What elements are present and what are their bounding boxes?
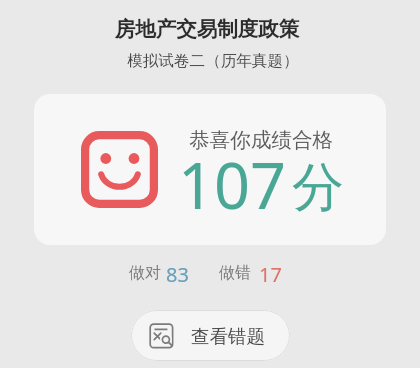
staticText: 107: [178, 142, 287, 228]
staticText: 恭喜你成绩合格: [189, 127, 334, 153]
staticText: 做错: [219, 263, 251, 283]
staticText: 83: [166, 261, 189, 288]
other: 查看错题: [149, 323, 177, 351]
staticText: 分: [292, 155, 344, 221]
staticText: 17: [259, 261, 282, 288]
staticText: 模拟试卷二（历年真题）: [3, 51, 420, 71]
button[interactable]: 查看错题: [131, 310, 290, 361]
staticText: 查看错题: [191, 325, 265, 348]
staticText: 做对: [129, 263, 161, 283]
staticText: 房地产交易制度政策: [0, 16, 417, 42]
